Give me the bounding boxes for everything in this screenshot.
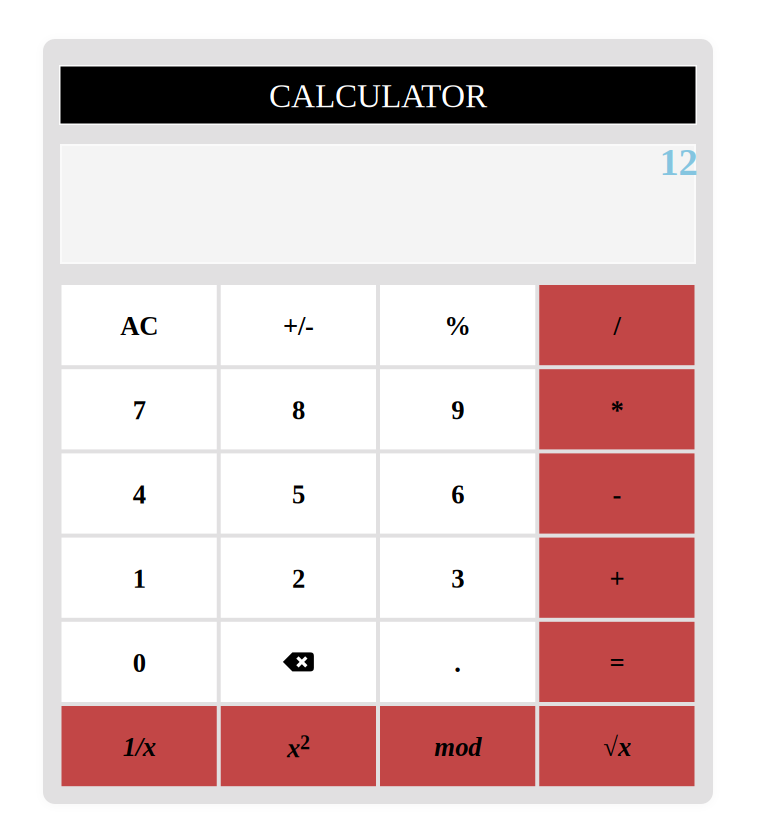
button[interactable]: 7 (61, 369, 217, 449)
button[interactable]: Percent (380, 285, 535, 365)
button[interactable]: All clear (61, 285, 217, 365)
staticText: √x (603, 732, 631, 762)
button[interactable]: 2 (221, 538, 376, 618)
staticText: + (609, 564, 624, 593)
staticText: . (454, 648, 461, 678)
button[interactable]: 0 (61, 622, 217, 702)
button[interactable]: Toggle sign (221, 285, 376, 365)
button[interactable]: 3 (380, 538, 535, 618)
button[interactable]: Add (539, 538, 694, 618)
staticText: 1/x (123, 732, 156, 762)
staticText: x2 (287, 732, 310, 762)
staticText: * (610, 395, 623, 425)
button[interactable]: Square (221, 706, 376, 786)
staticText: 1 (133, 564, 146, 593)
button[interactable]: 5 (221, 453, 376, 534)
button[interactable]: Decimal point (380, 622, 535, 702)
staticText: 12 (659, 141, 697, 183)
staticText: 8 (292, 395, 305, 425)
button[interactable]: 4 (61, 453, 217, 534)
button[interactable]: 6 (380, 453, 535, 534)
staticText: - (612, 480, 621, 509)
staticText: / (613, 311, 620, 341)
staticText: AC (120, 311, 158, 341)
button[interactable]: 8 (221, 369, 376, 449)
staticText: % (444, 311, 471, 341)
button[interactable]: Subtract (539, 453, 694, 534)
staticText: 3 (451, 564, 464, 593)
button[interactable]: 1 (61, 538, 217, 618)
staticText: mod (434, 732, 481, 762)
staticText: 5 (292, 480, 305, 509)
staticText: 2 (292, 564, 305, 593)
button[interactable]: Multiply (539, 369, 694, 449)
staticText: 9 (451, 395, 464, 425)
staticText: 6 (451, 480, 464, 509)
button[interactable]: Divide (539, 285, 694, 365)
button[interactable]: Backspace (221, 622, 376, 702)
staticText: 0 (133, 648, 146, 678)
staticText: 7 (133, 395, 146, 425)
button[interactable]: Reciprocal (61, 706, 217, 786)
staticText: = (609, 648, 624, 678)
button[interactable]: Equals (539, 622, 694, 702)
staticText: CALCULATOR (269, 77, 487, 114)
button[interactable]: Square root (539, 706, 694, 786)
button[interactable]: 9 (380, 369, 535, 449)
staticText: 4 (133, 480, 146, 509)
button[interactable]: Modulo (380, 706, 535, 786)
staticText: +/- (283, 311, 314, 341)
